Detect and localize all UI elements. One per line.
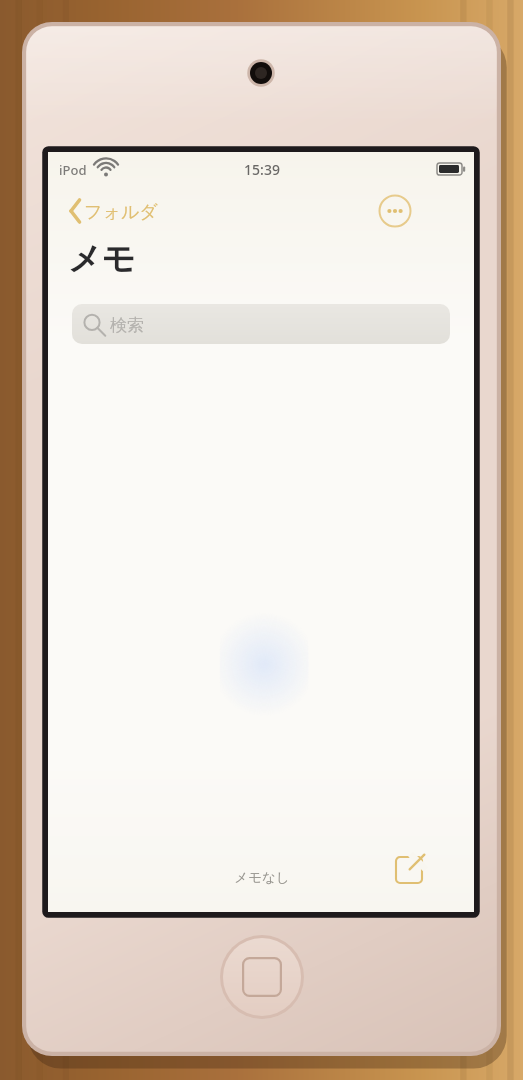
button[interactable]: New note bbox=[416, 854, 462, 900]
staticText: 検索 bbox=[110, 315, 144, 336]
staticText: メモ bbox=[68, 238, 136, 280]
staticText: 15:39 bbox=[244, 160, 280, 179]
staticText: メモなし bbox=[234, 869, 290, 886]
staticText: iPod bbox=[59, 161, 87, 179]
button[interactable]: 検索 bbox=[72, 304, 450, 344]
button[interactable]: フォルダ bbox=[56, 192, 186, 232]
staticText: フォルダ bbox=[84, 201, 158, 224]
